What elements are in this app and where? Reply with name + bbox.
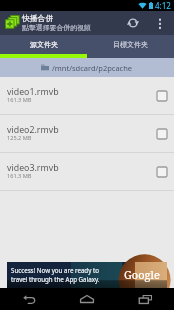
staticText: video2.rmvb [7,124,59,136]
button[interactable]: Refresh [123,13,143,33]
staticText: 161.3 MB [7,96,32,104]
staticText: 源文件夹 [30,40,58,49]
button[interactable]: 目標文件夹 [87,35,174,54]
button[interactable]: 源文件夹 [0,35,87,54]
staticText: 快播合併 [22,13,54,23]
button[interactable]: Back [9,288,49,310]
staticText: Success! Now you are ready to travel thr… [11,266,100,284]
button[interactable]: Success! Now you are ready to travel thr… [7,262,167,288]
button[interactable]: More options [152,13,168,33]
staticText: Google [124,267,160,282]
staticText: 目標文件夹 [113,40,148,49]
staticText: 161.3 MB [7,172,32,180]
staticText: 點擊選擇要合併的視頻 [22,23,91,32]
button[interactable]: video3.rmvb [0,153,174,190]
staticText: /mnt/sdcard/p2pcache [52,63,133,73]
staticText: 4:12 [155,0,171,11]
staticText: video3.rmvb [7,162,59,174]
button[interactable]: video1.rmvb [0,77,174,114]
staticText: 125.2 MB [7,134,32,142]
button[interactable]: Home [67,288,107,310]
button[interactable]: video2.rmvb [0,115,174,152]
button[interactable]: /mnt/sdcard/p2pcache [0,58,174,77]
button[interactable]: Recent apps [125,288,165,310]
staticText: video1.rmvb [7,86,59,98]
